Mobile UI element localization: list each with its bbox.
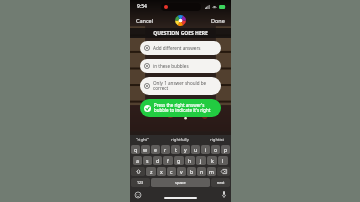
button[interactable]: next	[211, 178, 230, 187]
button[interactable]: n	[197, 167, 206, 176]
staticText: y	[184, 146, 187, 153]
staticText: a	[136, 157, 139, 164]
staticText: w	[143, 146, 148, 153]
staticText: Only 1 answer should be correct	[153, 80, 207, 92]
staticText: p	[224, 146, 228, 153]
button[interactable]: d	[153, 156, 162, 165]
button[interactable]: Emoji	[135, 192, 141, 198]
staticText: v	[180, 168, 183, 175]
button[interactable]: rightfully	[169, 136, 191, 144]
button[interactable]: j	[196, 156, 206, 165]
staticText: Cancel	[136, 17, 154, 24]
button[interactable]: q	[131, 145, 140, 154]
staticText: g	[177, 157, 181, 164]
staticText: n	[200, 168, 204, 175]
button[interactable]: s	[143, 156, 152, 165]
button[interactable]: Cancel	[130, 14, 160, 27]
staticText: j	[200, 157, 202, 164]
staticText: in these bubbles	[153, 63, 189, 69]
button[interactable]: in these bubbles	[140, 59, 221, 73]
button[interactable]: k	[207, 156, 217, 165]
staticText: d	[156, 157, 160, 164]
staticText: QUESTION GOES HERE	[153, 30, 208, 37]
staticText: next	[217, 180, 225, 185]
staticText: c	[170, 168, 173, 175]
button[interactable]: e	[151, 145, 160, 154]
button[interactable]: Backspace	[217, 167, 230, 176]
button[interactable]: Press the right answer's bubble to indic…	[140, 99, 221, 117]
button[interactable]: Voice input	[222, 191, 226, 198]
staticText: z	[150, 168, 153, 175]
staticText: Done	[211, 17, 225, 24]
button[interactable]: l	[218, 156, 228, 165]
button[interactable]: b	[187, 167, 196, 176]
staticText: k	[211, 157, 214, 164]
button[interactable]: Effects	[175, 15, 186, 26]
staticText: rightfully	[171, 137, 189, 143]
button[interactable]: u	[191, 145, 200, 154]
staticText: l	[222, 157, 224, 164]
staticText: 123	[137, 180, 144, 185]
staticText: t	[175, 146, 177, 153]
staticText: q	[134, 146, 138, 153]
staticText: u	[194, 146, 198, 153]
button[interactable]: 123	[131, 178, 150, 187]
button[interactable]: r	[161, 145, 170, 154]
button[interactable]: "right"	[134, 136, 151, 144]
button[interactable]: p	[221, 145, 230, 154]
staticText: i	[205, 146, 207, 153]
staticText: "right"	[136, 137, 149, 143]
staticText: b	[190, 168, 194, 175]
button[interactable]: i	[201, 145, 210, 154]
button[interactable]: x	[157, 167, 166, 176]
button[interactable]: Add different answers	[140, 41, 221, 55]
button[interactable]: Done	[205, 14, 231, 27]
button[interactable]: y	[181, 145, 190, 154]
staticText: Add different answers	[153, 45, 201, 51]
button[interactable]: a	[133, 156, 142, 165]
button[interactable]: o	[211, 145, 220, 154]
button[interactable]: space	[151, 178, 210, 187]
staticText: r	[164, 146, 167, 153]
staticText: m	[209, 168, 214, 175]
button[interactable]: g	[174, 156, 184, 165]
button[interactable]: c	[167, 167, 176, 176]
staticText: rightist	[210, 137, 225, 143]
button[interactable]: rightist	[208, 136, 227, 144]
staticText: f	[167, 157, 169, 164]
staticText: o	[214, 146, 218, 153]
button[interactable]: h	[185, 156, 195, 165]
button[interactable]: z	[146, 167, 156, 176]
button[interactable]: f	[163, 156, 173, 165]
button[interactable]: t	[171, 145, 180, 154]
staticText: space	[175, 180, 186, 185]
button[interactable]: Shift	[131, 167, 145, 176]
button[interactable]: v	[177, 167, 186, 176]
staticText: s	[146, 157, 149, 164]
button[interactable]: Only 1 answer should be correct	[140, 77, 221, 95]
button[interactable]: m	[207, 167, 216, 176]
button[interactable]: w	[141, 145, 150, 154]
staticText: h	[188, 157, 192, 164]
staticText: x	[160, 168, 163, 175]
staticText: Press the right answer's bubble to indic…	[154, 102, 211, 114]
staticText: 9:54	[137, 3, 147, 10]
staticText: e	[154, 146, 157, 153]
